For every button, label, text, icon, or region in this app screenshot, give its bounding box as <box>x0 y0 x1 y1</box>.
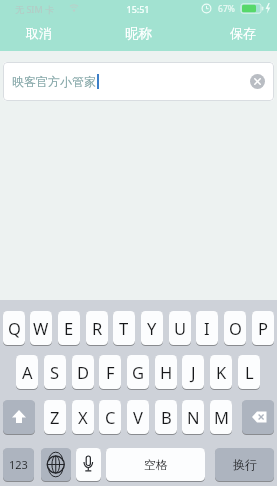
staticText: Q <box>8 317 21 339</box>
staticText: 空格 <box>144 457 168 472</box>
staticText: J <box>191 361 196 383</box>
button[interactable]: W <box>30 311 52 345</box>
button[interactable]: A <box>16 355 38 389</box>
button[interactable]: L <box>238 355 260 389</box>
staticText: M <box>214 406 229 428</box>
button[interactable]: X <box>72 400 94 434</box>
staticText: 昵称 <box>125 25 152 42</box>
staticText: 保存 <box>230 25 256 41</box>
staticText: F <box>106 361 115 383</box>
button[interactable]: C <box>99 400 121 434</box>
button[interactable]: N <box>182 400 204 434</box>
button[interactable]: M <box>210 400 232 434</box>
button[interactable]: S <box>44 355 66 389</box>
button[interactable]: J <box>182 355 204 389</box>
staticText: S <box>50 361 60 383</box>
button[interactable]: R <box>86 311 108 345</box>
button[interactable]: F <box>99 355 121 389</box>
button[interactable]: 123 <box>3 448 34 481</box>
button[interactable] <box>3 62 274 101</box>
button[interactable]: E <box>58 311 80 345</box>
staticText: 123 <box>9 457 28 472</box>
button[interactable] <box>250 74 265 89</box>
staticText: 无 SIM 卡 <box>15 3 54 15</box>
staticText: Z <box>50 406 60 428</box>
staticText: D <box>77 361 90 383</box>
staticText: N <box>187 406 200 428</box>
button[interactable]: 换行 <box>215 448 274 481</box>
staticText: 取消 <box>26 25 52 41</box>
button[interactable] <box>242 400 274 434</box>
button[interactable]: 取消 <box>17 22 61 44</box>
staticText: U <box>174 317 187 339</box>
button[interactable]: Q <box>3 311 25 345</box>
staticText: G <box>132 361 145 383</box>
button[interactable] <box>76 448 101 481</box>
staticText: 15:51 <box>126 3 150 15</box>
button[interactable]: V <box>127 400 149 434</box>
button[interactable]: U <box>169 311 191 345</box>
staticText: V <box>133 406 143 428</box>
staticText: X <box>78 406 88 428</box>
button[interactable]: D <box>72 355 94 389</box>
staticText: A <box>22 361 33 383</box>
staticText: I <box>204 317 210 339</box>
staticText: B <box>161 406 172 428</box>
staticText: 换行 <box>233 457 257 472</box>
button[interactable]: O <box>224 311 246 345</box>
button[interactable]: H <box>155 355 177 389</box>
staticText: H <box>160 361 173 383</box>
staticText: T <box>119 317 129 339</box>
button[interactable]: G <box>127 355 149 389</box>
button[interactable]: Z <box>44 400 66 434</box>
button[interactable]: 空格 <box>106 448 205 481</box>
staticText: E <box>64 317 74 339</box>
button[interactable]: P <box>252 311 274 345</box>
button[interactable]: I <box>196 311 218 345</box>
staticText: C <box>105 406 116 428</box>
staticText: Y <box>147 317 157 339</box>
button[interactable]: Y <box>141 311 163 345</box>
staticText: K <box>216 361 227 383</box>
staticText: R <box>92 317 103 339</box>
button[interactable]: T <box>113 311 135 345</box>
staticText: 映客官方小管家 <box>12 74 96 89</box>
staticText: O <box>229 317 242 339</box>
button[interactable]: 保存 <box>221 22 265 44</box>
button[interactable]: K <box>210 355 232 389</box>
staticText: 67% <box>218 3 235 15</box>
staticText: P <box>258 317 268 339</box>
staticText: W <box>33 317 49 339</box>
button[interactable] <box>3 400 35 434</box>
button[interactable]: B <box>155 400 177 434</box>
button[interactable] <box>41 448 71 481</box>
staticText: L <box>245 361 254 383</box>
